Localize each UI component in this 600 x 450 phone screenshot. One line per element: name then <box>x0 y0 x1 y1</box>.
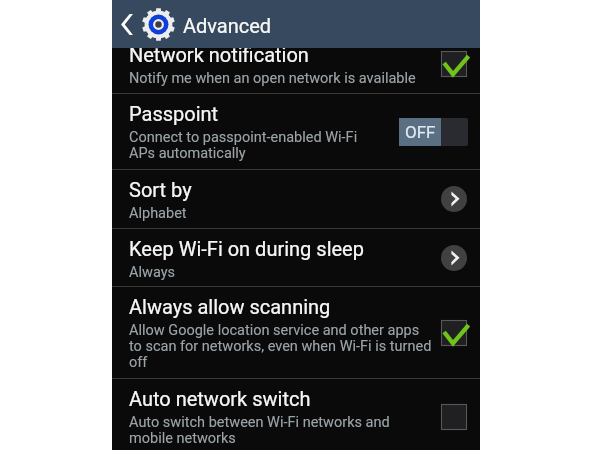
staticText: Advanced <box>183 14 272 37</box>
button[interactable]: Checked <box>437 316 471 350</box>
staticText: Always <box>129 264 176 280</box>
staticText: Notify me when an open network is availa… <box>129 70 416 86</box>
button[interactable]: Passpoint <box>112 94 480 169</box>
staticText: Network notification <box>129 48 309 66</box>
staticText: Alphabet <box>129 205 187 221</box>
staticText: Passpoint <box>129 102 219 125</box>
button[interactable]: Checked <box>437 48 471 81</box>
staticText: Always allow scanning <box>129 295 331 318</box>
staticText: Allow Google location service and other … <box>129 322 432 370</box>
button[interactable]: Unchecked <box>437 400 471 434</box>
staticText: OFF <box>405 122 436 142</box>
staticText: Keep Wi-Fi on during sleep <box>129 237 364 260</box>
staticText: Auto switch between Wi-Fi networks and m… <box>129 414 390 446</box>
staticText: Auto network switch <box>129 387 311 410</box>
button[interactable]: Always allow scanning <box>112 287 480 378</box>
button[interactable]: Back <box>114 7 140 41</box>
button[interactable]: Network notification <box>112 48 480 93</box>
button[interactable]: Sort by <box>112 170 480 228</box>
button[interactable]: Open <box>437 241 471 275</box>
staticText: Connect to passpoint-enabled Wi-Fi APs a… <box>129 129 358 161</box>
button[interactable]: Open <box>437 182 471 216</box>
button[interactable]: Auto network switch <box>112 379 480 450</box>
button[interactable]: Passpoint switch, off <box>399 118 468 146</box>
staticText: Sort by <box>129 178 192 201</box>
button[interactable]: Keep Wi-Fi on during sleep <box>112 229 480 286</box>
